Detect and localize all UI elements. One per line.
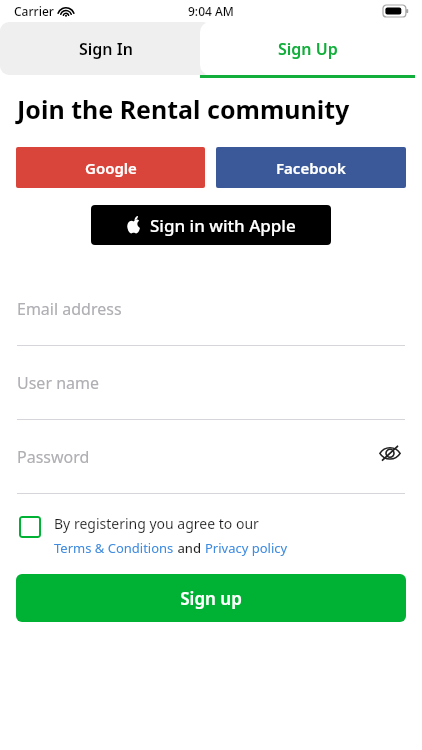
button[interactable]: Accept terms checkbox <box>19 514 422 557</box>
staticText: Carrier <box>14 3 54 19</box>
button[interactable]: Google <box>16 147 205 188</box>
button[interactable]: Show password <box>375 438 405 468</box>
button[interactable]: Sign Up <box>200 22 415 78</box>
button[interactable]: Facebook <box>216 147 406 188</box>
staticText: Sign In <box>79 38 133 60</box>
button[interactable]: Sign In <box>0 22 212 75</box>
staticText: Password <box>17 446 90 468</box>
button[interactable]: Terms & Conditions <box>54 539 174 557</box>
button[interactable]: Sign up <box>16 574 406 622</box>
staticText: 9:04 AM <box>188 3 234 19</box>
staticText: Google <box>85 158 137 178</box>
staticText: Sign up <box>180 587 242 610</box>
other: Accept terms checkbox <box>19 516 41 538</box>
staticText: Sign in with Apple <box>150 214 296 237</box>
staticText: and <box>174 539 205 557</box>
button[interactable]: Sign in with Apple <box>91 205 331 245</box>
staticText: Sign Up <box>278 38 338 60</box>
staticText: By registering you agree to our <box>54 514 259 533</box>
staticText: Email address <box>17 298 122 320</box>
staticText: Facebook <box>276 158 346 178</box>
staticText: Join the Rental community <box>17 92 350 126</box>
button[interactable]: Privacy policy <box>205 539 288 557</box>
staticText: User name <box>17 372 100 394</box>
